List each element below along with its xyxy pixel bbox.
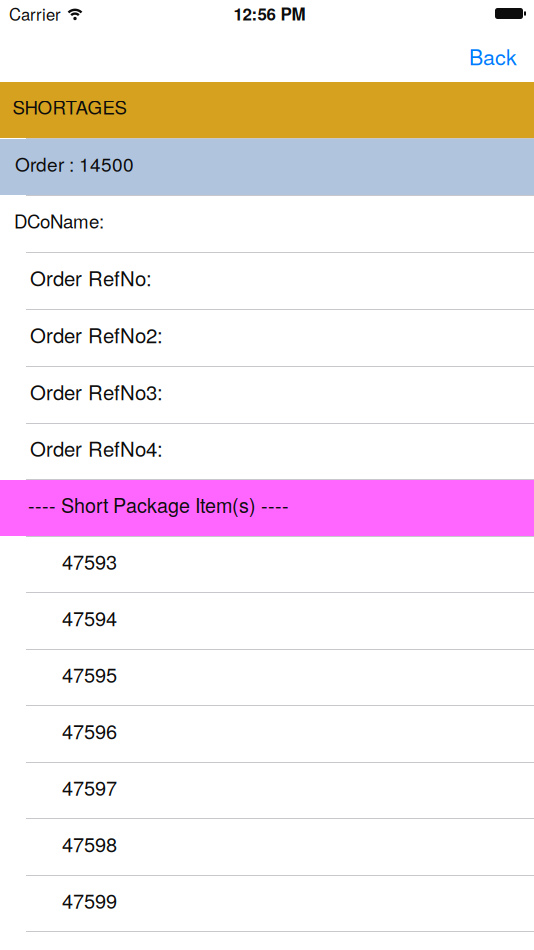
button[interactable]: DCoName: <box>0 196 534 252</box>
staticText: Carrier <box>9 2 61 25</box>
staticText: ---- Short Package Item(s) ---- <box>28 490 289 519</box>
staticText: DCoName: <box>14 207 104 234</box>
staticText: 47599 <box>62 886 117 914</box>
button[interactable]: 47593 <box>0 537 534 592</box>
staticText: Order RefNo3: <box>30 377 163 406</box>
staticText: 12:56 PM <box>233 1 305 26</box>
staticText: Back <box>469 41 517 71</box>
button[interactable]: 47599 <box>0 876 534 931</box>
staticText: Order RefNo2: <box>30 320 163 349</box>
button[interactable]: Order RefNo4: <box>0 424 534 479</box>
staticText: 47598 <box>62 829 117 858</box>
staticText: 47593 <box>62 547 117 575</box>
staticText: SHORTAGES <box>12 93 126 120</box>
staticText: 47597 <box>62 773 117 801</box>
button[interactable]: 47595 <box>0 650 534 705</box>
staticText: Order RefNo4: <box>30 433 163 463</box>
button[interactable]: 47598 <box>0 819 534 875</box>
button[interactable]: 47597 <box>0 763 534 818</box>
button[interactable]: 47596 <box>0 706 534 762</box>
button[interactable]: 47594 <box>0 593 534 649</box>
staticText: Order : 14500 <box>15 150 134 177</box>
staticText: 47596 <box>62 716 117 745</box>
button[interactable]: Order RefNo3: <box>0 367 534 423</box>
button[interactable]: Order RefNo2: <box>0 310 534 366</box>
button[interactable]: Order RefNo: <box>0 253 534 309</box>
staticText: Order RefNo: <box>30 263 152 292</box>
staticText: 47595 <box>62 660 117 688</box>
staticText: 47594 <box>62 603 117 632</box>
button[interactable]: Back <box>469 41 534 71</box>
